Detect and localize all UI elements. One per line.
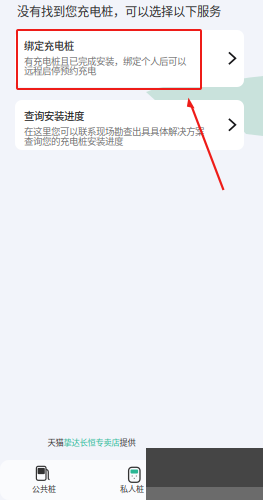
staticText: 查询安装进度 — [24, 108, 84, 123]
staticText: 绑定充电桩 — [24, 38, 74, 53]
staticText: 有充电桩且已完成安装，绑定个人后可以 远程启停预约充电 — [24, 54, 186, 77]
button[interactable]: 公共桩 — [0, 464, 88, 496]
staticText: 提供 — [119, 436, 135, 448]
button[interactable]: 绑定充电桩 — [15, 30, 244, 87]
staticText: 没有找到您充电桩，可以选择以下服务 — [17, 2, 221, 20]
staticText: 在这里您可以联系现场勘查出具具体解决方案 查询您的充电桩安装进度 — [24, 124, 204, 147]
button[interactable]: 私人桩 — [88, 464, 176, 496]
staticText: 挚达长恒专卖店 — [63, 436, 119, 448]
staticText: 天猫 — [47, 436, 63, 448]
button[interactable]: 查询安装进度 — [15, 100, 244, 150]
staticText: 公共桩 — [32, 483, 56, 494]
staticText: 私人桩 — [120, 483, 144, 494]
